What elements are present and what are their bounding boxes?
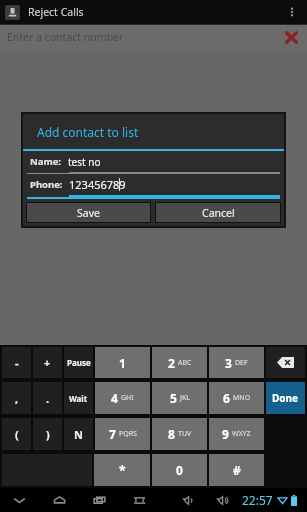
staticText: Name: [30, 155, 62, 168]
button[interactable]: 7 [95, 418, 150, 450]
button[interactable]: 8 [152, 418, 207, 450]
staticText: 4 [111, 390, 118, 406]
button[interactable]: 1 [95, 347, 150, 378]
staticText: 6 [223, 390, 230, 406]
staticText: * [119, 462, 126, 478]
button[interactable]: N [64, 418, 93, 450]
button[interactable]: 0 [152, 454, 207, 486]
button[interactable]: Volume down [180, 491, 198, 509]
button[interactable]: 5 [152, 382, 207, 414]
staticText: Cancel [202, 206, 235, 220]
button[interactable]: 3 [209, 347, 264, 378]
staticText: ABC [178, 358, 192, 368]
staticText: ) [46, 427, 50, 442]
staticText: + [44, 355, 51, 370]
button[interactable]: Recents [90, 491, 108, 509]
button[interactable]: * [94, 454, 150, 486]
button[interactable]: . [33, 382, 62, 414]
staticText: DEF [235, 358, 248, 368]
button[interactable]: + [33, 347, 62, 378]
button[interactable]: More options [283, 3, 301, 21]
staticText: 123456789 [69, 177, 126, 192]
staticText: Done [272, 391, 299, 405]
staticText: 3 [225, 355, 232, 371]
button[interactable]: 2 [152, 347, 207, 378]
staticText: GHI [121, 393, 134, 403]
staticText: 5 [170, 390, 177, 406]
button[interactable]: Clear [281, 27, 301, 47]
staticText: 1 [119, 355, 126, 371]
button[interactable]: Done [266, 382, 305, 414]
staticText: JKL [180, 393, 190, 403]
staticText: Wait [69, 393, 88, 404]
staticText: Enter a contact number [7, 30, 124, 44]
staticText: Reject Calls [28, 5, 84, 19]
staticText: 0 [176, 462, 183, 478]
staticText: Phone: [30, 178, 63, 191]
button[interactable]: ( [2, 418, 31, 450]
staticText: Pause [67, 357, 91, 368]
staticText: PQRS [119, 429, 137, 439]
staticText: 2 [168, 355, 175, 371]
staticText: Save [77, 206, 100, 220]
staticText: 22:57 [242, 492, 273, 508]
staticText: , [15, 391, 19, 406]
button[interactable]: Back [10, 491, 28, 509]
button[interactable]: Cancel [156, 203, 280, 222]
button[interactable]: # [209, 454, 264, 486]
staticText: 7 [109, 426, 116, 442]
button[interactable]: Wait [64, 382, 93, 414]
button[interactable]: , [2, 382, 31, 414]
staticText: - [15, 355, 19, 370]
staticText: Add contact to list [37, 124, 139, 140]
button[interactable]: Save [27, 203, 150, 222]
staticText: TUV [178, 429, 192, 439]
button[interactable]: 9 [209, 418, 264, 450]
staticText: . [46, 391, 50, 406]
staticText: WXYZ [232, 429, 251, 439]
staticText: # [233, 462, 241, 478]
button[interactable]: App icon [5, 5, 20, 20]
button[interactable]: Screenshot [130, 491, 148, 509]
button[interactable]: Volume up [214, 491, 232, 509]
staticText: 8 [168, 426, 175, 442]
button[interactable]: ) [33, 418, 62, 450]
button[interactable]: Pause [64, 347, 93, 378]
staticText: N [74, 427, 83, 442]
staticText: 9 [222, 426, 229, 442]
staticText: ( [15, 427, 19, 442]
button[interactable]: - [2, 347, 31, 378]
button[interactable]: Home [50, 491, 68, 509]
button[interactable]: 4 [95, 382, 150, 414]
staticText: MNO [233, 393, 251, 403]
staticText: test no [68, 155, 101, 169]
button[interactable]: Backspace [266, 347, 305, 378]
button[interactable]: 6 [209, 382, 264, 414]
